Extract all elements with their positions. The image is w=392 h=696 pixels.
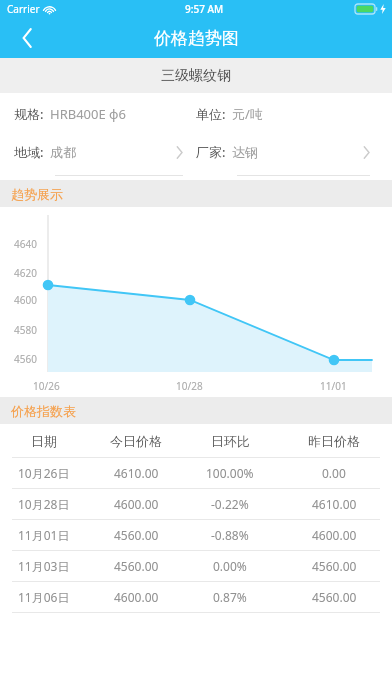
staticText: 规格: bbox=[14, 105, 44, 123]
staticText: 4580 bbox=[14, 323, 37, 337]
staticText: 4640 bbox=[14, 237, 37, 251]
staticText: 今日价格 bbox=[110, 433, 162, 449]
staticText: 4600.00 bbox=[312, 527, 357, 543]
staticText: 4600.00 bbox=[114, 589, 159, 605]
staticText: 地域: bbox=[14, 143, 44, 161]
staticText: 日期 bbox=[31, 433, 57, 449]
staticText: 4600 bbox=[14, 293, 37, 307]
staticText: 0.00% bbox=[213, 558, 247, 574]
staticText: -0.88% bbox=[211, 527, 249, 543]
staticText: 价格指数表 bbox=[11, 403, 76, 419]
button[interactable]: 10月26日 bbox=[0, 458, 392, 488]
staticText: 11月06日 bbox=[18, 589, 70, 605]
button[interactable]: 11月06日 bbox=[0, 582, 392, 612]
staticText: 4560.00 bbox=[114, 527, 159, 543]
staticText: 三级螺纹钢 bbox=[161, 67, 231, 85]
staticText: 0.87% bbox=[213, 589, 247, 605]
staticText: 日环比 bbox=[211, 433, 250, 449]
staticText: 4560 bbox=[14, 352, 37, 366]
staticText: 达钢 bbox=[232, 144, 258, 160]
staticText: 11/01 bbox=[320, 379, 347, 393]
staticText: 0.00 bbox=[322, 465, 346, 481]
staticText: 4620 bbox=[14, 266, 37, 280]
staticText: 10月26日 bbox=[18, 465, 70, 481]
staticText: 100.00% bbox=[206, 465, 254, 481]
staticText: 10/28 bbox=[176, 379, 203, 393]
staticText: 4610.00 bbox=[114, 465, 159, 481]
staticText: Carrier bbox=[7, 2, 40, 16]
staticText: 9:57 AM bbox=[185, 2, 224, 16]
staticText: 11月03日 bbox=[18, 558, 70, 574]
staticText: 元/吨 bbox=[232, 105, 263, 123]
staticText: 昨日价格 bbox=[308, 433, 360, 449]
staticText: 4600.00 bbox=[114, 496, 159, 512]
staticText: 4610.00 bbox=[312, 496, 357, 512]
button[interactable]: 10月28日 bbox=[0, 489, 392, 519]
staticText: 10月28日 bbox=[18, 496, 70, 512]
button[interactable]: Back bbox=[0, 18, 54, 58]
button[interactable]: 11月03日 bbox=[0, 551, 392, 581]
staticText: 4560.00 bbox=[312, 589, 357, 605]
staticText: 趋势展示 bbox=[11, 186, 63, 202]
button[interactable]: 11月01日 bbox=[0, 520, 392, 550]
staticText: 厂家: bbox=[196, 143, 226, 161]
staticText: HRB400E φ6 bbox=[50, 105, 126, 123]
staticText: 10/26 bbox=[33, 379, 60, 393]
staticText: 4560.00 bbox=[114, 558, 159, 574]
staticText: 4560.00 bbox=[312, 558, 357, 574]
staticText: 价格趋势图 bbox=[154, 28, 239, 49]
staticText: 11月01日 bbox=[18, 527, 70, 543]
button[interactable]: 厂家: bbox=[196, 135, 392, 180]
staticText: 单位: bbox=[196, 105, 226, 123]
staticText: 成都 bbox=[50, 144, 76, 160]
button[interactable]: 地域: bbox=[0, 135, 196, 180]
staticText: -0.22% bbox=[211, 496, 249, 512]
